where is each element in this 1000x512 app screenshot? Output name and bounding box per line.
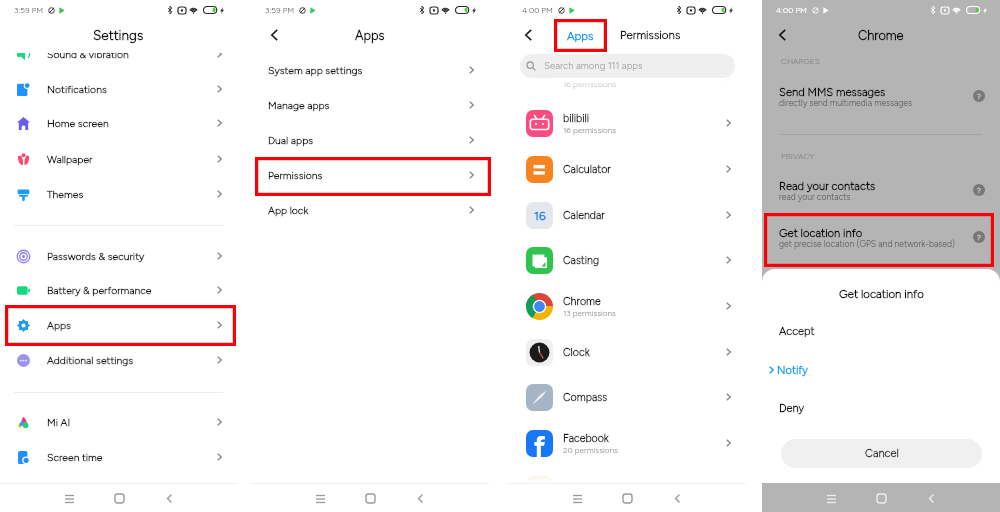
- button[interactable]: WPS Office: [508, 60, 746, 94]
- staticText: Home screen: [47, 117, 109, 129]
- button[interactable]: Home: [356, 484, 384, 512]
- staticText: ?: [977, 232, 981, 242]
- staticText: Apps: [355, 28, 385, 43]
- staticText: Calendar: [563, 209, 605, 222]
- button[interactable]: Home: [105, 484, 133, 512]
- button[interactable]: Sound & vibration: [0, 41, 237, 67]
- staticText: Themes: [47, 188, 84, 200]
- staticText: Screen time: [47, 451, 103, 463]
- button[interactable]: Deny: [762, 397, 1000, 419]
- button[interactable]: Themes: [0, 181, 237, 207]
- staticText: Read your contacts: [779, 179, 876, 192]
- staticText: Search among 111 apps: [544, 60, 643, 72]
- staticText: Wallpaper: [47, 153, 93, 165]
- button[interactable]: Recents: [563, 484, 591, 512]
- button[interactable]: Calculator: [508, 152, 746, 186]
- staticText: 16: [534, 209, 546, 223]
- staticText: Dual apps: [268, 134, 314, 146]
- button[interactable]: Apps: [555, 21, 605, 51]
- button[interactable]: Manage apps: [251, 93, 489, 117]
- staticText: ?: [977, 185, 981, 195]
- button[interactable]: Wallpaper: [0, 146, 237, 172]
- button[interactable]: Facebook: [508, 426, 746, 460]
- staticText: Passwords & security: [47, 250, 145, 262]
- button[interactable]: bilibili: [508, 106, 746, 140]
- button[interactable]: Back: [917, 484, 945, 512]
- staticText: Facebook: [563, 432, 609, 445]
- staticText: WPS Office: [563, 66, 618, 79]
- staticText: Sound & vibration: [47, 48, 129, 60]
- button[interactable]: Accept: [762, 320, 1000, 342]
- button[interactable]: Recents: [306, 484, 334, 512]
- staticText: Chrome: [563, 295, 601, 308]
- button[interactable]: Notifications: [0, 76, 237, 102]
- button[interactable]: Recents: [817, 484, 845, 512]
- button[interactable]: App lock: [251, 198, 489, 222]
- button[interactable]: Send MMS messages: [762, 81, 1000, 111]
- staticText: 3:59 PM: [14, 5, 44, 15]
- button[interactable]: Chrome: [508, 289, 746, 323]
- button[interactable]: Home: [867, 484, 895, 512]
- staticText: Notifications: [47, 83, 107, 95]
- staticText: 4:00 PM: [776, 5, 808, 15]
- staticText: get precise location (GPS and network-ba…: [779, 239, 955, 249]
- staticText: Chrome: [858, 28, 904, 43]
- staticText: PRIVACY: [781, 151, 815, 161]
- button[interactable]: Casting: [508, 243, 746, 277]
- button[interactable]: Back: [155, 484, 183, 512]
- staticText: read your contacts: [779, 192, 851, 202]
- staticText: Clock: [563, 346, 590, 359]
- staticText: Notify: [777, 364, 808, 377]
- staticText: Battery & performance: [47, 284, 152, 296]
- button[interactable]: Compass: [508, 380, 746, 414]
- staticText: Send MMS messages: [779, 85, 886, 98]
- button[interactable]: Apps: [0, 312, 237, 338]
- staticText: Cancel: [865, 447, 899, 460]
- staticText: Permissions: [268, 169, 323, 181]
- staticText: App lock: [268, 204, 309, 216]
- staticText: Casting: [563, 254, 600, 267]
- button[interactable]: Home screen: [0, 110, 237, 136]
- staticText: Deny: [779, 402, 805, 415]
- button[interactable]: Notify: [762, 359, 1000, 381]
- staticText: 4:00 PM: [522, 5, 554, 15]
- staticText: CHARGES: [781, 56, 820, 66]
- button[interactable]: Back: [262, 23, 286, 47]
- button[interactable]: Additional settings: [0, 347, 237, 373]
- staticText: 16 permissions: [563, 125, 617, 135]
- button[interactable]: Back: [516, 23, 540, 47]
- staticText: System app settings: [268, 64, 363, 76]
- button[interactable]: 16: [508, 198, 746, 232]
- button[interactable]: System app settings: [251, 58, 489, 82]
- staticText: Calculator: [563, 163, 611, 176]
- button[interactable]: Clock: [508, 335, 746, 369]
- button[interactable]: Screen time: [0, 444, 237, 470]
- staticText: 16 permissions: [563, 79, 617, 89]
- button[interactable]: Gallery: [508, 472, 746, 506]
- staticText: Permissions: [620, 28, 681, 42]
- button[interactable]: Mi AI: [0, 409, 237, 435]
- staticText: Gallery: [563, 483, 596, 496]
- button[interactable]: Passwords & security: [0, 243, 237, 269]
- staticText: Additional settings: [47, 354, 134, 366]
- staticText: Manage apps: [268, 99, 330, 111]
- staticText: Mi AI: [47, 416, 71, 428]
- staticText: Apps: [567, 29, 594, 43]
- staticText: Accept: [779, 325, 815, 338]
- button[interactable]: Read your contacts: [762, 175, 1000, 205]
- staticText: bilibili: [563, 112, 590, 125]
- button[interactable]: Home: [613, 484, 641, 512]
- staticText: Compass: [563, 391, 608, 404]
- staticText: Get location info: [839, 287, 924, 301]
- button[interactable]: Dual apps: [251, 128, 489, 152]
- button[interactable]: Back: [406, 484, 434, 512]
- button[interactable]: Permissions: [251, 163, 489, 187]
- staticText: Settings: [93, 27, 144, 43]
- button[interactable]: Back: [770, 23, 794, 47]
- button[interactable]: Search among 111 apps: [520, 54, 735, 78]
- button[interactable]: Recents: [55, 484, 83, 512]
- button[interactable]: Battery & performance: [0, 277, 237, 303]
- button[interactable]: Back: [663, 484, 691, 512]
- button[interactable]: Cancel: [781, 439, 982, 468]
- button[interactable]: Get location info: [762, 222, 1000, 252]
